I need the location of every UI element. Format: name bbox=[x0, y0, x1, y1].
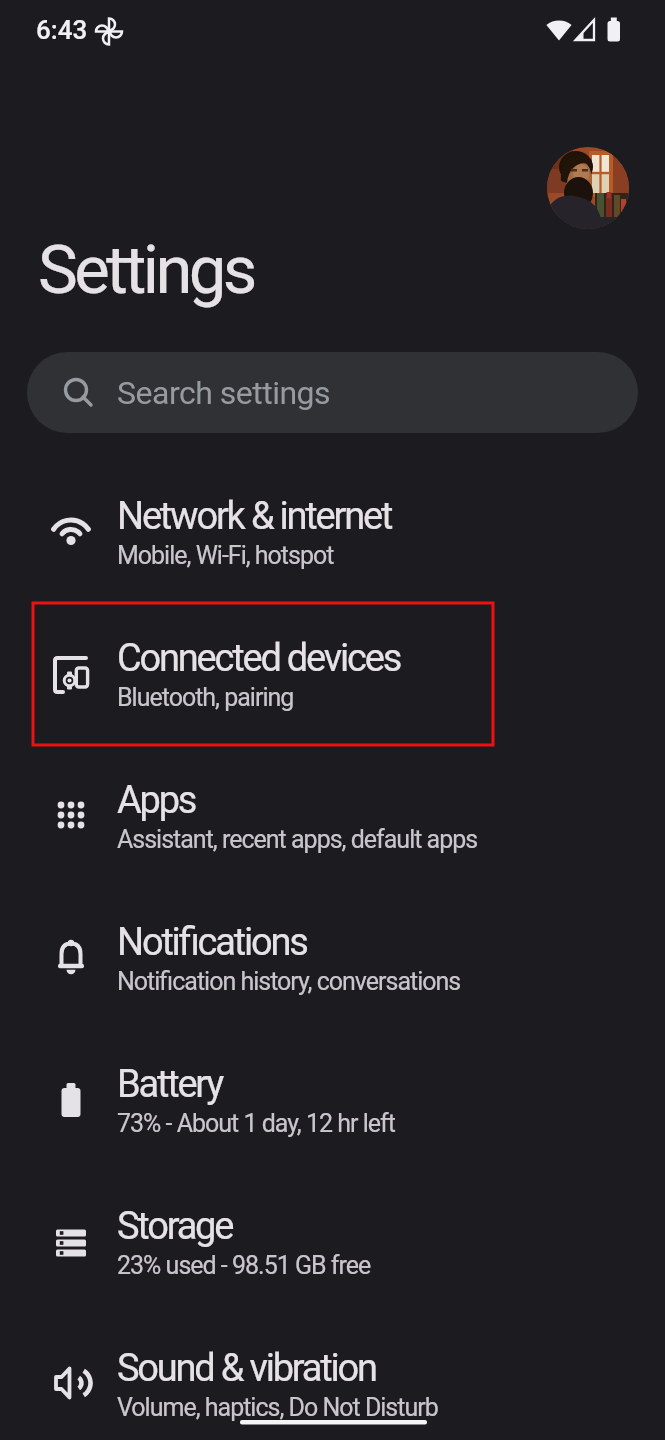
staticText: Notification history, conversations bbox=[117, 967, 461, 996]
staticText: 23% used - 98.51 GB free bbox=[117, 1251, 371, 1280]
button[interactable] bbox=[547, 147, 629, 229]
staticText: Mobile, Wi-Fi, hotspot bbox=[117, 541, 334, 570]
button[interactable]: Connected devices bbox=[0, 605, 665, 747]
button[interactable]: Search settings bbox=[27, 352, 638, 433]
staticText: Volume, haptics, Do Not Disturb bbox=[117, 1393, 438, 1422]
staticText: Network & internet bbox=[117, 494, 392, 539]
staticText: Notifications bbox=[117, 920, 307, 965]
staticText: Apps bbox=[117, 778, 196, 823]
staticText: Sound & vibration bbox=[117, 1346, 376, 1391]
staticText: Search settings bbox=[117, 374, 331, 412]
button[interactable]: Notifications bbox=[0, 889, 665, 1031]
staticText: Storage bbox=[117, 1204, 233, 1249]
staticText: 73% - About 1 day, 12 hr left bbox=[117, 1109, 395, 1138]
staticText: Battery bbox=[117, 1062, 223, 1107]
staticText: Connected devices bbox=[117, 636, 401, 681]
staticText: 6:43 bbox=[36, 15, 88, 45]
button[interactable]: Battery bbox=[0, 1031, 665, 1173]
button[interactable]: Sound & vibration bbox=[0, 1315, 665, 1440]
staticText: Settings bbox=[38, 231, 254, 310]
button[interactable]: Network & internet bbox=[0, 463, 665, 605]
staticText: Bluetooth, pairing bbox=[117, 683, 294, 712]
button[interactable]: Apps bbox=[0, 747, 665, 889]
button[interactable]: Storage bbox=[0, 1173, 665, 1315]
staticText: Assistant, recent apps, default apps bbox=[117, 825, 478, 854]
